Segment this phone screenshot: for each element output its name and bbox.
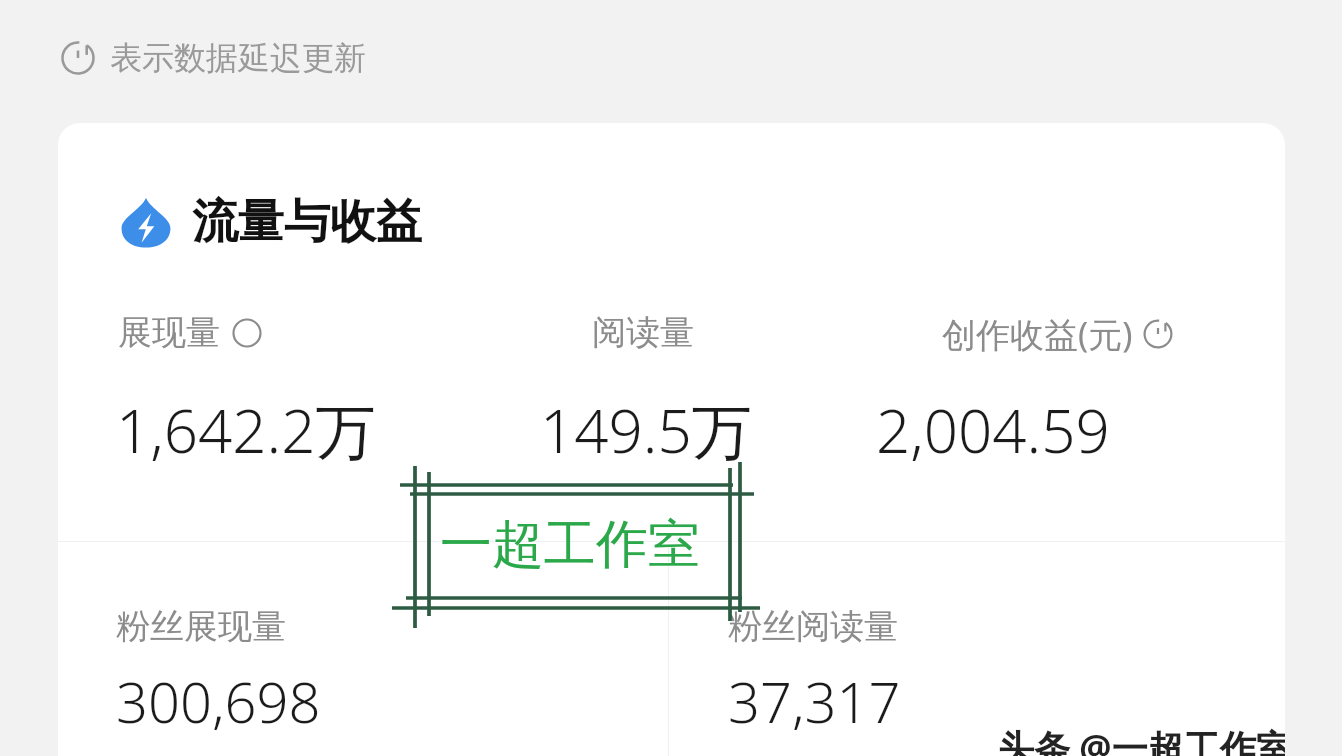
staticText: 展现量 [118,311,220,354]
staticText: 149.5万 [540,389,752,471]
staticText: 粉丝展现量 [116,605,286,648]
staticText: 表示数据延迟更新 [110,38,366,78]
staticText: 粉丝阅读量 [728,605,898,648]
staticText: 1,642.2万 [116,389,376,471]
staticText: 头条 @一超工作室 [998,723,1285,756]
staticText: 一超工作室 [440,512,700,578]
button[interactable]: Traffic and revenue [120,193,422,251]
staticText: 创作收益(元) [942,311,1133,357]
button[interactable]: 展现量 [118,311,262,354]
staticText: 37,317 [728,663,901,739]
staticText: 阅读量 [592,311,694,354]
button[interactable]: Delayed data [56,34,370,82]
staticText: 流量与收益 [192,193,422,251]
staticText: 300,698 [116,663,321,739]
staticText: 2,004.59 [876,389,1110,471]
other: Traffic and revenue [120,196,172,248]
other: Help [232,318,262,348]
other: Delayed data [60,40,96,76]
